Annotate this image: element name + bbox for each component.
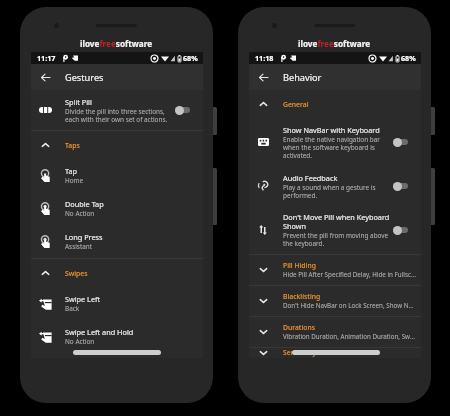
staticText: Long Press xyxy=(65,232,103,242)
staticText: Show NavBar with Keyboard xyxy=(283,125,380,135)
button[interactable]: Taps xyxy=(31,131,203,159)
button[interactable]: Pill Hiding xyxy=(249,255,421,285)
staticText: Taps xyxy=(65,141,80,150)
staticText: 68% xyxy=(401,53,416,63)
staticText: Split Pill xyxy=(65,97,92,107)
button[interactable]: Swipe Left and Hold xyxy=(31,320,203,353)
staticText: Gestures xyxy=(65,71,104,84)
staticText: Durations xyxy=(283,323,316,332)
staticText: Prevent the pill from moving above the k… xyxy=(283,231,389,248)
button[interactable]: Blacklisting xyxy=(249,286,421,316)
staticText: General xyxy=(283,100,309,109)
staticText: Enable the native navigation bar when th… xyxy=(283,135,380,160)
button[interactable]: Durations xyxy=(249,317,421,347)
staticText: 11:17 xyxy=(37,53,56,63)
staticText: Audio Feedback xyxy=(283,173,338,183)
button[interactable]: Swipes xyxy=(31,259,203,287)
staticText: Swipe Left xyxy=(65,294,101,304)
staticText: Behavior xyxy=(283,71,322,84)
button[interactable]: Split Pill xyxy=(31,90,203,130)
staticText: 68% xyxy=(183,53,198,63)
staticText: Swipe Left and Hold xyxy=(65,327,134,337)
button[interactable]: Show NavBar with Keyboard xyxy=(249,118,421,166)
staticText: Don't Hide NavBar on Lock Screen, Show N… xyxy=(283,301,416,310)
staticText: Assistant xyxy=(65,242,93,251)
staticText: Sensitivity xyxy=(283,348,317,357)
button[interactable]: Long Press xyxy=(31,225,203,258)
staticText: 11:18 xyxy=(255,53,274,63)
staticText: Tap xyxy=(65,166,78,176)
staticText: No Action xyxy=(65,337,95,346)
button[interactable]: Back xyxy=(251,64,275,90)
staticText: Home xyxy=(65,176,84,185)
button[interactable]: Sensitivity xyxy=(249,348,421,358)
button[interactable]: Back xyxy=(33,64,57,90)
staticText: Double Tap xyxy=(65,199,104,209)
staticText: Swipes xyxy=(65,269,88,278)
staticText: Blacklisting xyxy=(283,292,321,301)
staticText: ilovefreesoftware xyxy=(80,38,153,49)
button[interactable]: Swipe Left xyxy=(31,287,203,320)
button[interactable]: Don't Move Pill when Keyboard Shown xyxy=(249,206,421,254)
button[interactable]: Audio Feedback xyxy=(249,166,421,206)
staticText: Don't Move Pill when Keyboard Shown xyxy=(283,212,390,231)
button[interactable]: Double Tap xyxy=(31,192,203,225)
staticText: Pill Hiding xyxy=(283,261,316,270)
staticText: Hide Pill After Specified Delay, Hide in… xyxy=(283,270,416,279)
button[interactable]: General xyxy=(249,90,421,118)
button[interactable]: Tap xyxy=(31,159,203,192)
staticText: Back xyxy=(65,304,80,313)
staticText: Play a sound when a gesture is performed… xyxy=(283,183,376,200)
staticText: Vibration Duration, Animation Duration, … xyxy=(283,332,416,341)
staticText: ilovefreesoftware xyxy=(298,38,371,49)
staticText: Divide the pill into three sections, eac… xyxy=(65,107,168,124)
staticText: No Action xyxy=(65,209,95,218)
